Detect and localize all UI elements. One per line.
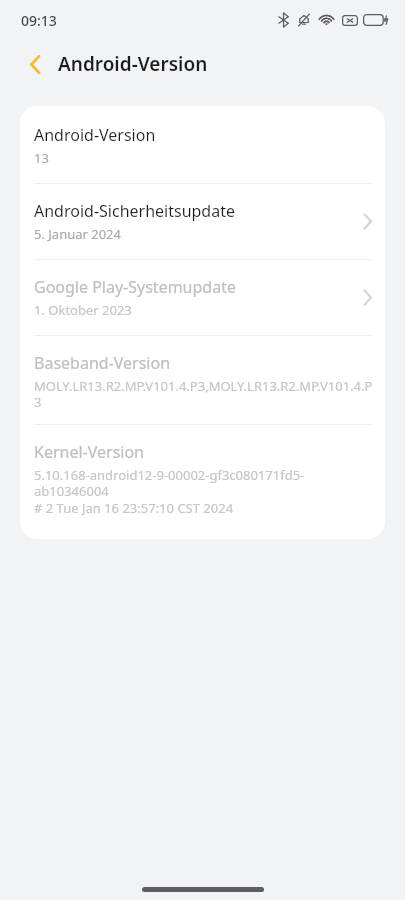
button[interactable]: Kernel-Version (20, 425, 385, 539)
staticText: 1. Oktober 2023 (34, 301, 132, 319)
staticText: 5. Januar 2024 (34, 225, 121, 243)
staticText: 09:13 (21, 11, 57, 30)
staticText: Android-Version (34, 124, 156, 146)
button[interactable]: Android-Version (20, 106, 385, 183)
staticText: 13 (34, 149, 49, 167)
staticText: Kernel-Version (34, 441, 145, 463)
staticText: Android-Sicherheitsupdate (34, 200, 235, 222)
staticText: Android-Version (58, 51, 208, 77)
button[interactable]: Zurück (22, 51, 48, 77)
staticText: MOLY.LR13.R2.MP.V101.4.P3,MOLY.LR13.R2.M… (34, 377, 373, 410)
staticText: # 2 Tue Jan 16 23:57:10 CST 2024 (34, 499, 234, 517)
staticText: 5.10.168-android12-9-00002-gf3c080171fd5… (34, 466, 373, 499)
staticText: Baseband-Version (34, 352, 171, 374)
button[interactable]: Google Play-Systemupdate (20, 260, 385, 335)
staticText: Google Play-Systemupdate (34, 276, 236, 298)
button[interactable]: Android-Sicherheitsupdate (20, 184, 385, 259)
button[interactable]: Baseband-Version (20, 336, 385, 424)
